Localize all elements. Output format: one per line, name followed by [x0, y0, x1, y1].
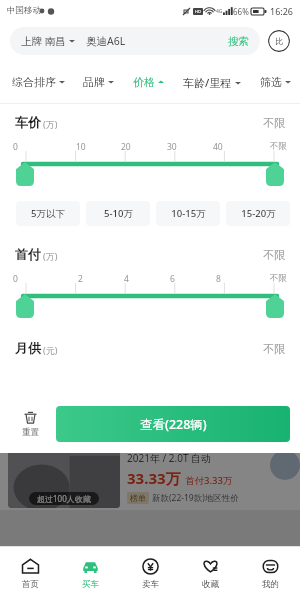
staticText: 车价 [15, 114, 41, 130]
staticText: 价格 [133, 75, 155, 89]
button[interactable]: 5-10万 [86, 201, 150, 226]
staticText: 我的 [262, 579, 279, 590]
staticText: 不限 [263, 116, 285, 130]
staticText: (元) [43, 344, 58, 356]
button[interactable]: 5万以下 [16, 201, 80, 226]
staticText: 33.33万 [127, 468, 181, 488]
staticText: 中国移动 [7, 5, 41, 16]
staticText: 0 [13, 141, 18, 153]
staticText: 查看(228辆) [140, 416, 207, 433]
button[interactable]: 价格 [130, 71, 167, 93]
button[interactable]: 买车 [60, 547, 120, 600]
staticText: 重置 [22, 427, 39, 438]
button[interactable]: 重置 [6, 401, 54, 447]
staticText: 10 [76, 141, 86, 153]
staticText: 8 [216, 273, 221, 285]
staticText: 2021年 / 2.0T 自动 [127, 451, 212, 465]
staticText: 不限 [263, 248, 285, 262]
button[interactable]: 10-15万 [156, 201, 220, 226]
staticText: 新款(22-19款)地区性价 [152, 492, 239, 504]
button[interactable]: 首页 [0, 547, 60, 600]
staticText: 不限 [263, 342, 285, 356]
button[interactable] [0, 272, 300, 318]
button[interactable]: 收藏 [180, 547, 240, 600]
staticText: 超过100人收藏 [37, 493, 91, 504]
staticText: 首付3.33万 [185, 474, 233, 487]
button[interactable]: 综合排序 [9, 71, 68, 93]
staticText: 上牌 南昌 [21, 34, 66, 48]
staticText: 66% [233, 6, 249, 17]
staticText: 15-20万 [241, 207, 276, 220]
staticText: 0 [13, 273, 18, 285]
staticText: 品牌 [83, 75, 105, 89]
staticText: 不限 [270, 273, 287, 284]
staticText: 收藏 [202, 579, 219, 590]
button[interactable]: 查看(228辆) [56, 406, 290, 442]
staticText: 奥迪A6L [86, 34, 126, 48]
button[interactable]: 搜索 [228, 35, 249, 48]
button[interactable]: 车龄/里程 [180, 71, 244, 94]
button[interactable] [0, 140, 300, 186]
staticText: 5万以下 [31, 207, 65, 220]
staticText: 车龄/里程 [183, 75, 232, 90]
staticText: 首页 [22, 579, 39, 590]
staticText: 买车 [82, 579, 99, 590]
staticText: 2 [78, 273, 83, 285]
staticText: (万) [43, 250, 58, 262]
staticText: 10-15万 [171, 207, 206, 220]
staticText: 比 [275, 36, 283, 46]
staticText: HD [195, 9, 201, 14]
button[interactable]: 对比 [268, 30, 290, 52]
button[interactable]: 筛选 [257, 71, 294, 93]
button[interactable]: 上牌 南昌 [10, 27, 260, 55]
staticText: 综合排序 [12, 75, 56, 89]
staticText: 月供 [15, 340, 41, 356]
staticText: 筛选 [260, 75, 282, 89]
button[interactable]: 15-20万 [226, 201, 290, 226]
staticText: 6 [170, 273, 175, 285]
staticText: 4G [216, 8, 223, 15]
staticText: (万) [43, 118, 58, 130]
staticText: 首付 [15, 246, 41, 262]
staticText: 卖车 [142, 579, 159, 590]
staticText: 不限 [270, 141, 287, 152]
staticText: 30 [167, 141, 177, 153]
staticText: 4 [124, 273, 129, 285]
staticText: 5-10万 [104, 207, 133, 220]
staticText: 榜单 [130, 493, 146, 503]
button[interactable]: 我的 [240, 547, 300, 600]
staticText: 16:26 [270, 5, 294, 17]
button[interactable]: 卖车 [120, 547, 180, 600]
staticText: 40 [213, 141, 223, 153]
staticText: 20 [121, 141, 131, 153]
button[interactable]: 品牌 [80, 71, 117, 93]
